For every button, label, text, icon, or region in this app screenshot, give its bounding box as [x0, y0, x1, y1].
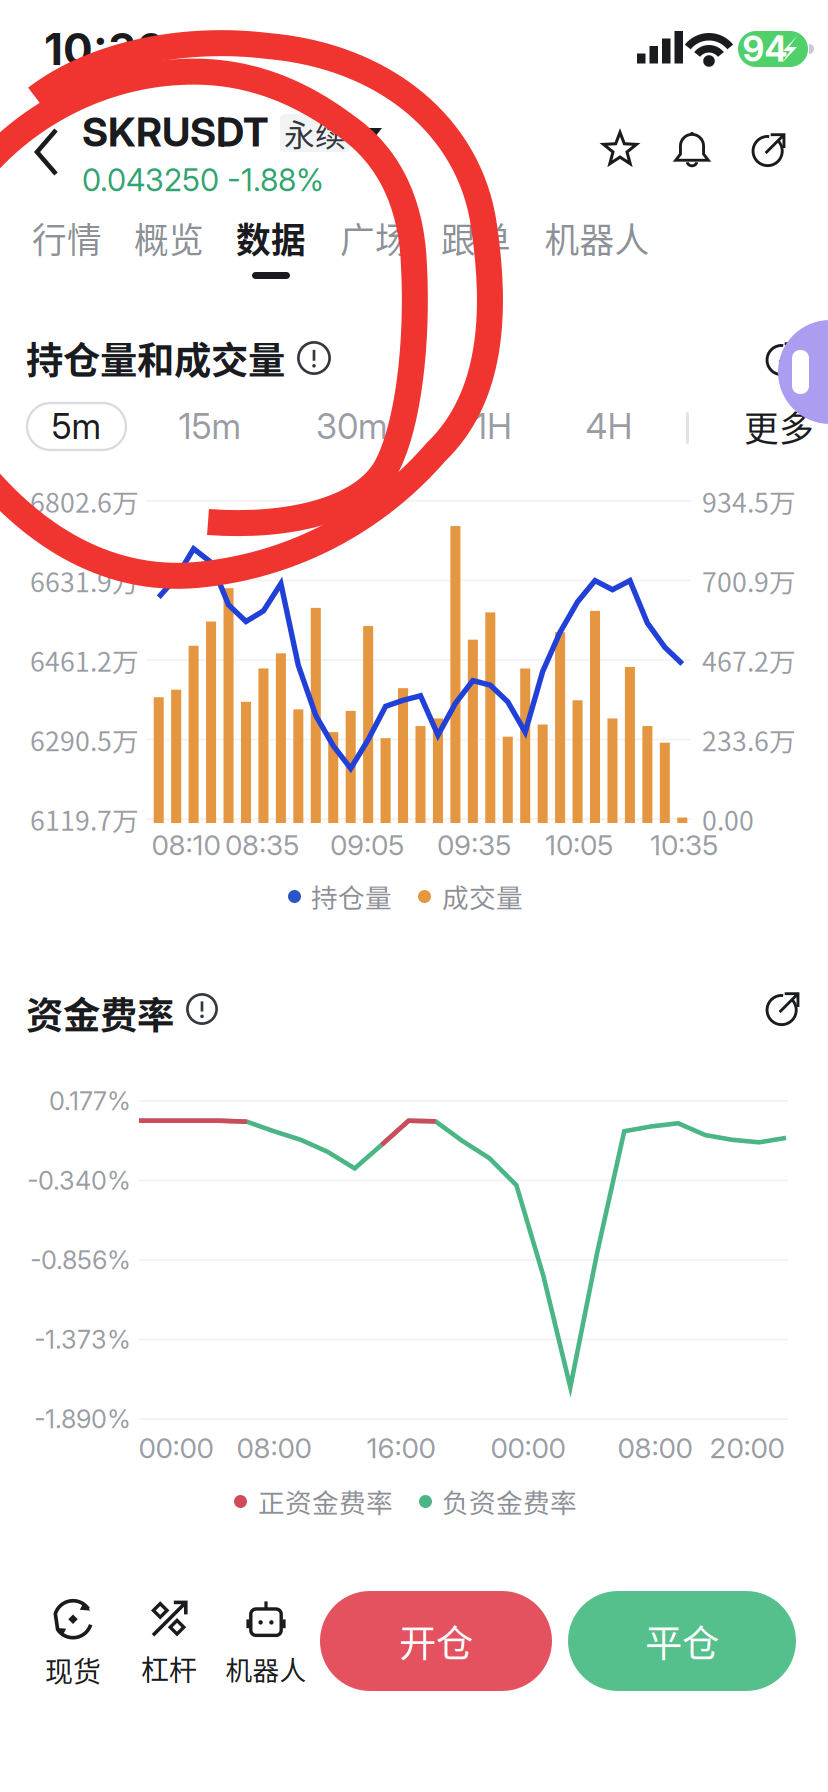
staticText: 6119.7万 [30, 800, 139, 838]
staticText: 1H [474, 405, 512, 447]
staticText: 跟单 [441, 213, 511, 263]
staticText: 行情 [32, 213, 102, 263]
button[interactable]: 广场 [0, 0, 828, 1792]
button[interactable]: 4H [0, 0, 828, 1792]
button[interactable]: Expand open interest chart [0, 0, 828, 1792]
staticText: 持仓量和成交量 [26, 331, 285, 385]
staticText: 数据 [236, 213, 306, 263]
button[interactable]: 平仓 [0, 0, 828, 1792]
staticText: 6461.2万 [30, 641, 139, 679]
staticText: 09:05 [330, 828, 404, 862]
staticText: 15m [178, 405, 241, 447]
staticText: 4H [585, 405, 632, 447]
button[interactable]: 行情 [0, 0, 828, 1792]
staticText: 概览 [134, 213, 204, 263]
staticText: 10:36 [44, 22, 165, 76]
button[interactable]: 机器人 [0, 0, 828, 1792]
button[interactable]: 机器人 [0, 0, 828, 1792]
staticText: 16:00 [366, 1431, 435, 1465]
staticText: 30m [316, 405, 388, 447]
staticText: 94 [742, 28, 787, 70]
staticText: 934.5万 [702, 482, 796, 520]
staticText: -1.373% [34, 1324, 131, 1355]
button[interactable]: Alerts [0, 0, 828, 1792]
staticText: 10:35 [650, 828, 718, 862]
staticText: 233.6万 [702, 720, 796, 759]
staticText: 永续 [284, 111, 346, 155]
staticText: SKRUSDT [82, 108, 269, 156]
button[interactable]: 15m [0, 0, 828, 1792]
staticText: 持仓量 [311, 877, 392, 915]
staticText: 更多 [744, 401, 814, 452]
button[interactable]: 现货 [0, 0, 828, 1792]
staticText: 10:05 [545, 828, 613, 862]
staticText: 机器人 [225, 1649, 306, 1688]
staticText: 700.9万 [702, 561, 796, 600]
staticText: 467.2万 [702, 641, 796, 679]
button[interactable]: 更多 [0, 0, 828, 1792]
staticText: 6290.5万 [30, 720, 139, 759]
button[interactable]: Back [0, 0, 828, 1792]
staticText: 成交量 [442, 877, 523, 915]
staticText: 负资金费率 [442, 1482, 577, 1520]
button[interactable]: Favorite [0, 0, 828, 1792]
staticText: -0.340% [27, 1165, 131, 1196]
button[interactable]: 1H [0, 0, 828, 1792]
staticText: 0.043250 -1.88% [82, 161, 324, 198]
staticText: 6802.6万 [30, 482, 139, 520]
button[interactable]: 永续 [0, 0, 828, 1792]
staticText: 08:10 [151, 828, 220, 862]
staticText: 开仓 [399, 1614, 473, 1668]
staticText: 正资金费率 [258, 1482, 393, 1520]
staticText: 20:00 [709, 1431, 784, 1465]
staticText: 6631.9万 [30, 561, 139, 600]
staticText: 09:35 [437, 828, 511, 862]
staticText: 08:00 [236, 1431, 311, 1465]
staticText: -0.856% [30, 1245, 131, 1275]
staticText: 广场 [340, 213, 410, 263]
button[interactable]: 概览 [0, 0, 828, 1792]
staticText: 机器人 [544, 213, 649, 263]
button[interactable]: 开仓 [0, 0, 828, 1792]
staticText: 5m [51, 405, 101, 447]
button[interactable]: 杠杆 [0, 0, 828, 1792]
button[interactable]: 5m [0, 0, 828, 1792]
button[interactable]: 30m [0, 0, 828, 1792]
staticText: 平仓 [645, 1614, 719, 1668]
staticText: 08:35 [225, 828, 299, 862]
button[interactable]: Expand funding rate chart [0, 0, 828, 1792]
staticText: 00:00 [138, 1431, 213, 1465]
button[interactable]: 跟单 [0, 0, 828, 1792]
staticText: 0.00 [702, 800, 754, 838]
staticText: 08:00 [617, 1431, 692, 1465]
staticText: 杠杆 [141, 1648, 197, 1689]
staticText: 现货 [45, 1650, 101, 1690]
button[interactable]: Share [0, 0, 828, 1792]
staticText: 0.177% [49, 1086, 131, 1116]
staticText: 00:00 [490, 1431, 565, 1465]
staticText: 资金费率 [26, 986, 174, 1040]
staticText: -1.890% [34, 1404, 131, 1434]
button[interactable]: 数据 [0, 0, 828, 1792]
